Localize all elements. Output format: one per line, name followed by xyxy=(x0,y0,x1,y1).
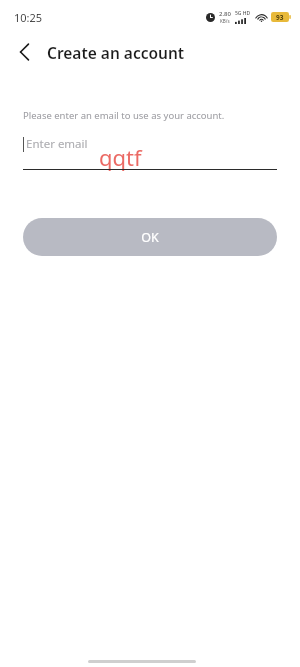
staticText: 5G HD xyxy=(235,10,251,17)
button[interactable]: OK xyxy=(23,218,277,256)
staticText: Please enter an email to use as your acc… xyxy=(23,109,225,122)
staticText: KB/s xyxy=(220,18,230,24)
staticText: 10:25 xyxy=(14,10,43,25)
button[interactable]: Enter email xyxy=(23,136,277,170)
staticText: qqtf xyxy=(99,142,142,172)
staticText: 2.80 xyxy=(219,10,231,18)
staticText: Enter email xyxy=(26,136,88,152)
button[interactable]: Back xyxy=(8,36,40,68)
staticText: OK xyxy=(141,229,159,246)
staticText: Create an account xyxy=(47,42,185,63)
staticText: 93 xyxy=(276,13,284,22)
